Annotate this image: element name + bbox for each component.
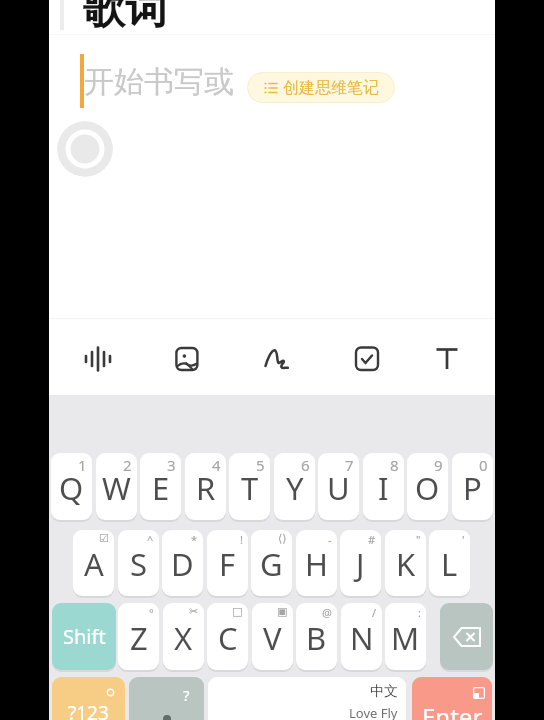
staticText: - [328, 532, 332, 547]
button[interactable] [57, 121, 113, 177]
staticText: 中文 [370, 683, 398, 701]
staticText: Enter [422, 700, 483, 720]
button[interactable]: Z [118, 603, 159, 670]
staticText: F [219, 543, 236, 585]
staticText: C [218, 617, 238, 659]
staticText: Z [130, 617, 148, 659]
button[interactable]: ? [129, 677, 204, 720]
staticText: 7 [345, 455, 354, 475]
button[interactable]: H [296, 530, 337, 596]
staticText: A [84, 543, 104, 585]
staticText: ▣ [277, 605, 288, 618]
staticText: S [130, 543, 148, 585]
staticText: 0 [479, 455, 488, 475]
button[interactable]: M [385, 603, 426, 670]
staticText: 开始书写或 [84, 63, 234, 101]
staticText: R [196, 467, 216, 509]
button[interactable]: S [118, 530, 159, 596]
staticText: D [171, 543, 194, 585]
button[interactable]: Q [51, 453, 92, 520]
button[interactable]: ?123 [52, 677, 125, 720]
button[interactable]: U [318, 453, 359, 520]
button[interactable]: X [163, 603, 204, 670]
button[interactable] [167, 339, 207, 379]
staticText: 创建思维笔记 [283, 78, 379, 98]
staticText: @ [322, 605, 332, 620]
button[interactable]: J [340, 530, 381, 596]
staticText: H [305, 543, 328, 585]
button[interactable]: K [385, 530, 426, 596]
button[interactable]: L [429, 530, 470, 596]
staticText: ^ [147, 532, 154, 547]
button[interactable]: F [207, 530, 248, 596]
button[interactable]: I [363, 453, 404, 520]
staticText: I [378, 467, 389, 509]
staticText: L [441, 543, 458, 585]
button[interactable]: P [452, 453, 493, 520]
staticText: Y [286, 467, 304, 509]
button[interactable]: 中文 [208, 677, 406, 720]
staticText: / [372, 605, 377, 620]
staticText: N [350, 617, 374, 659]
button[interactable]: A [73, 530, 114, 596]
button[interactable]: Y [274, 453, 315, 520]
staticText: 歌词 [83, 0, 167, 36]
button[interactable]: O [407, 453, 448, 520]
staticText: □ [232, 605, 243, 618]
button[interactable] [440, 603, 493, 670]
staticText: Shift [63, 623, 106, 650]
staticText: U [327, 467, 350, 509]
staticText: P [463, 467, 482, 509]
button[interactable]: E [140, 453, 181, 520]
staticText: J [356, 543, 365, 585]
staticText: E [152, 467, 170, 509]
staticText: ° [149, 605, 154, 620]
button[interactable] [257, 339, 297, 379]
staticText: ✂ [189, 605, 199, 618]
staticText: G [260, 543, 283, 585]
staticText: ?123 [68, 700, 109, 720]
button[interactable]: R [185, 453, 226, 520]
button[interactable]: N [341, 603, 382, 670]
staticText: ' [462, 532, 465, 547]
staticText: 6 [301, 455, 310, 475]
staticText: B [306, 617, 327, 659]
button[interactable]: Shift [52, 603, 116, 670]
staticText: K [396, 543, 416, 585]
staticText: ⟨⟩ [278, 532, 287, 545]
staticText: O [415, 467, 440, 509]
staticText: ☑ [99, 532, 109, 545]
staticText: " [416, 532, 421, 547]
staticText: Q [59, 467, 84, 509]
staticText: 5 [256, 455, 265, 475]
staticText: ! [240, 532, 243, 547]
button[interactable] [427, 339, 467, 379]
button[interactable]: 创建思维笔记 [247, 72, 395, 103]
button[interactable]: T [229, 453, 270, 520]
staticText: X [174, 617, 193, 659]
staticText: ? [183, 685, 190, 705]
staticText: W [102, 467, 131, 509]
staticText: 9 [434, 455, 443, 475]
button[interactable]: C [207, 603, 248, 670]
staticText: 1 [78, 455, 87, 475]
button[interactable]: W [96, 453, 137, 520]
staticText: # [368, 532, 376, 547]
button[interactable]: G [251, 530, 292, 596]
staticText: 2 [123, 455, 132, 475]
staticText: * [191, 532, 198, 547]
button[interactable] [78, 339, 118, 379]
staticText: 8 [390, 455, 399, 475]
staticText: T [241, 467, 259, 509]
staticText: M [391, 617, 420, 659]
staticText: : [418, 605, 421, 620]
staticText: 3 [167, 455, 176, 475]
button[interactable] [347, 339, 387, 379]
button[interactable]: Enter [412, 677, 492, 720]
button[interactable]: V [252, 603, 293, 670]
staticText: 4 [212, 455, 221, 475]
button[interactable]: D [162, 530, 203, 596]
staticText: Love Fly [349, 704, 398, 720]
staticText: V [263, 617, 282, 659]
button[interactable]: B [296, 603, 337, 670]
